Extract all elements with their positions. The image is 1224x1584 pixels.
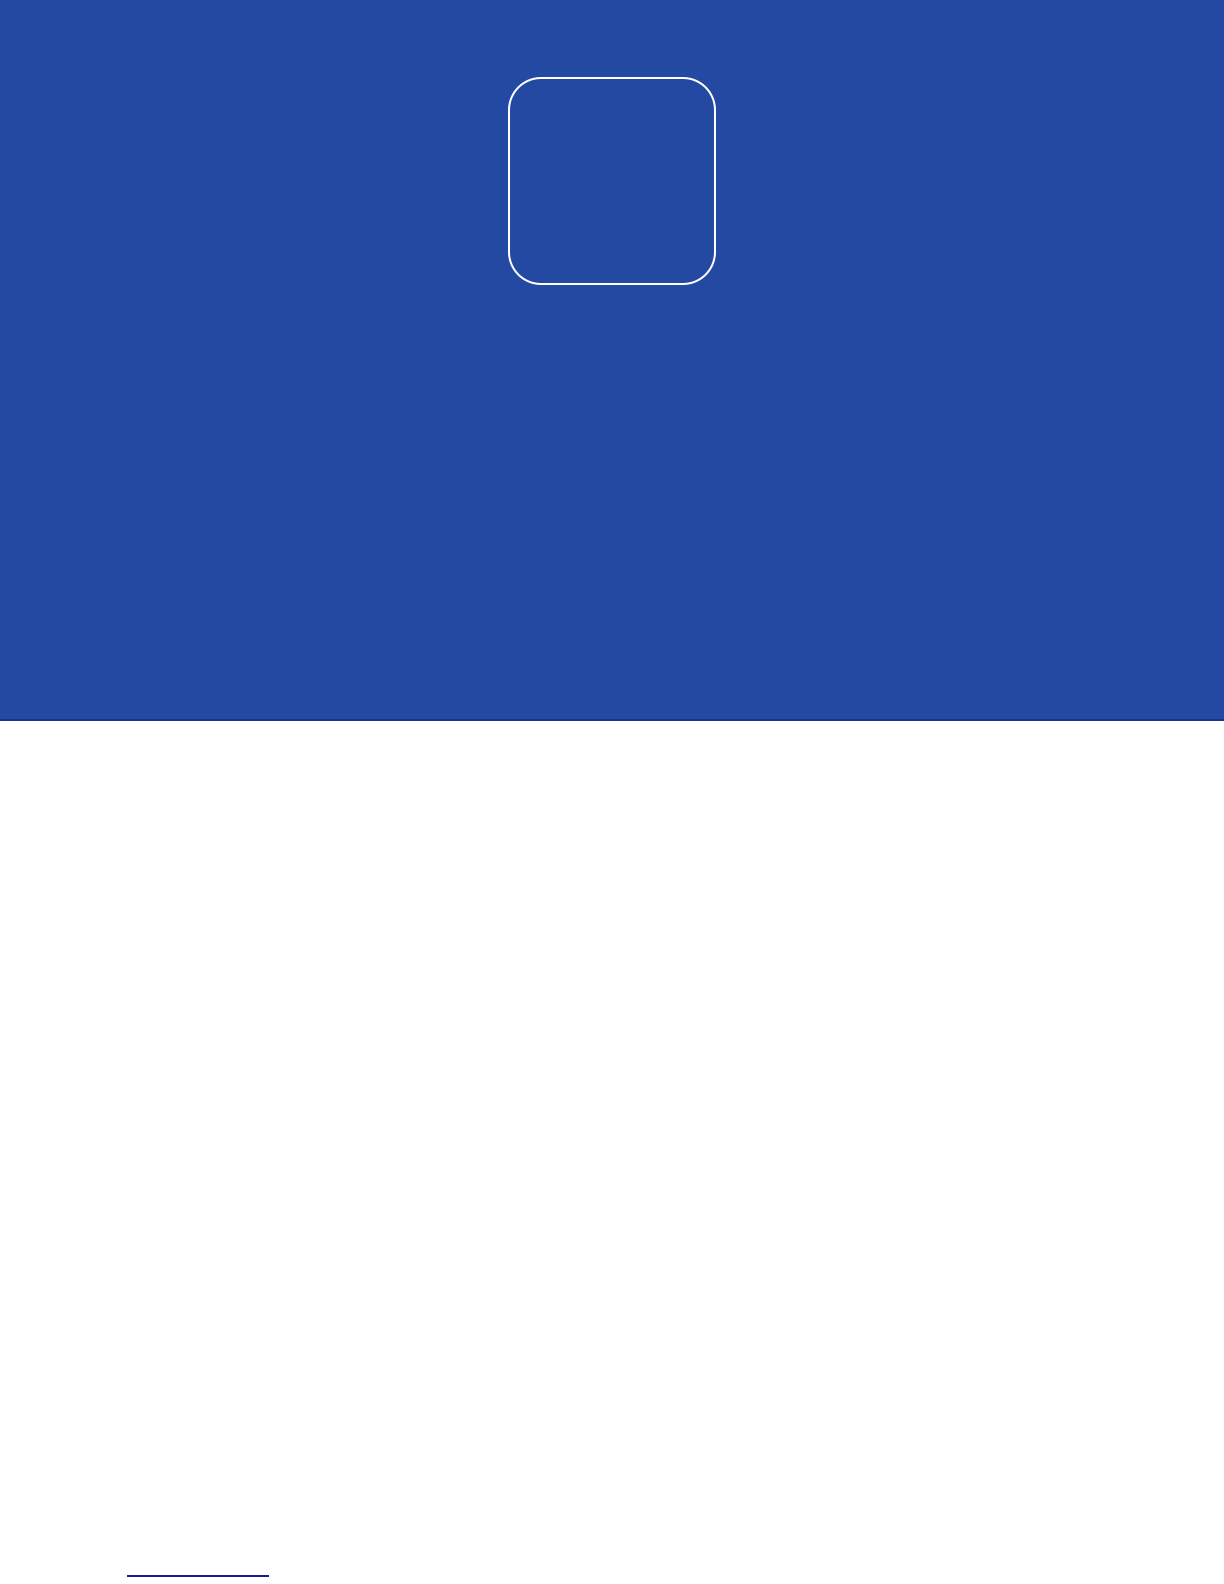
button[interactable]: App icon [509, 78, 715, 284]
button[interactable]: Privacy Policy [127, 1511, 269, 1577]
